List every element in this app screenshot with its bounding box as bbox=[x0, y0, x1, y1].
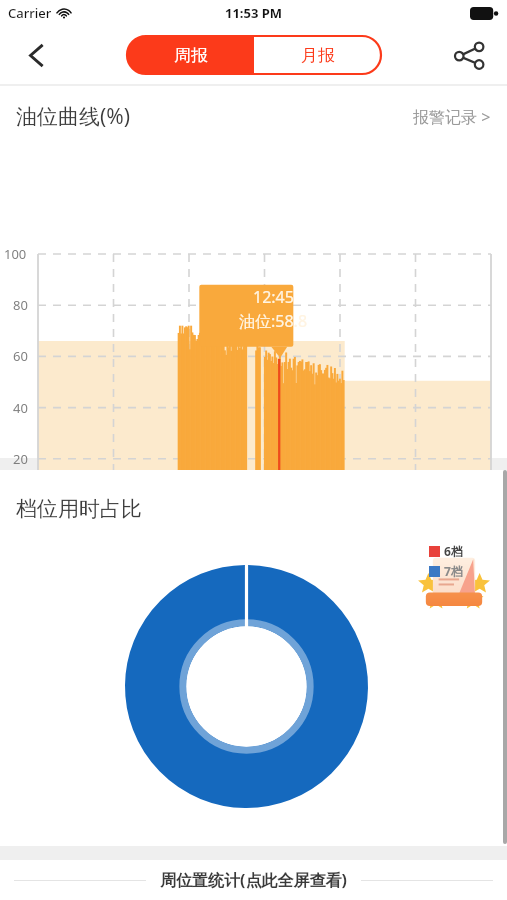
staticText: 报警记录 > bbox=[413, 106, 491, 128]
staticText: 60 bbox=[13, 347, 28, 365]
staticText: 6档 bbox=[444, 543, 463, 559]
staticText: 20 bbox=[13, 450, 28, 468]
staticText: 40 bbox=[13, 399, 28, 417]
button[interactable]: 周报 bbox=[127, 36, 254, 74]
staticText: 04:00 bbox=[90, 514, 124, 532]
staticText: 12:45 bbox=[253, 286, 294, 308]
staticText: 月报 bbox=[301, 45, 335, 66]
staticText: 档位用时占比 bbox=[16, 496, 142, 522]
staticText: 80 bbox=[13, 296, 28, 314]
staticText: 00:00 bbox=[14, 514, 48, 532]
button[interactable]: 周位置统计(点此全屏查看) bbox=[0, 860, 507, 900]
button[interactable]: Back bbox=[14, 33, 58, 77]
button[interactable]: 月报 bbox=[254, 36, 381, 74]
staticText: 油位:58.8 bbox=[239, 310, 308, 332]
staticText: 100 bbox=[4, 245, 27, 263]
staticText: 11:53 PM bbox=[225, 4, 283, 22]
button[interactable]: 报警记录 > bbox=[413, 106, 491, 128]
staticText: 0 bbox=[22, 501, 30, 519]
staticText: 周报 bbox=[174, 45, 208, 66]
button[interactable]: Share bbox=[447, 33, 491, 77]
staticText: 油位曲线(%) bbox=[16, 102, 131, 131]
staticText: 7档 bbox=[444, 563, 463, 579]
staticText: Carrier bbox=[8, 4, 52, 22]
staticText: 周位置统计(点此全屏查看) bbox=[160, 869, 347, 891]
